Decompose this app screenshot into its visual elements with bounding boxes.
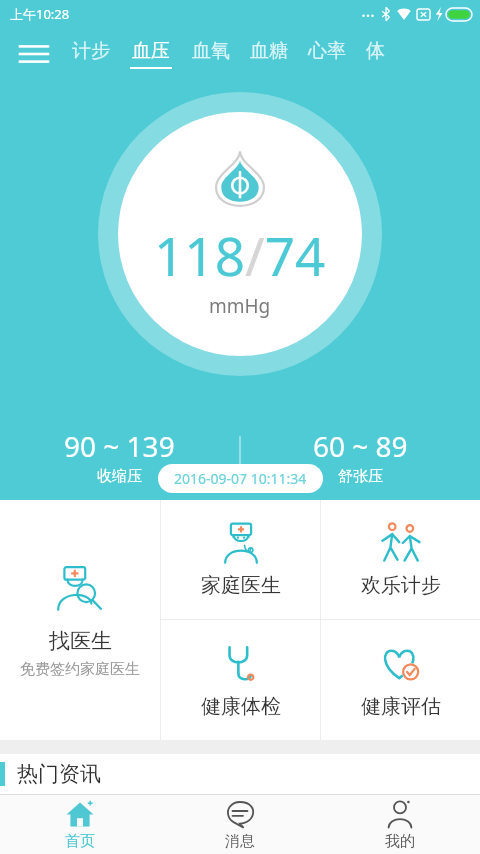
button[interactable]: 血氧 — [192, 39, 230, 69]
button[interactable]: 体 — [366, 39, 385, 69]
staticText: 舒张压 — [338, 467, 383, 486]
button[interactable]: 欢乐计步 — [321, 500, 480, 619]
staticText: 上午10:28 — [10, 5, 70, 23]
staticText: 心率 — [308, 39, 346, 63]
staticText: mmHg — [209, 293, 271, 319]
button[interactable]: 计步 — [72, 39, 110, 69]
button[interactable]: 心率 — [308, 39, 346, 69]
staticText: 健康体检 — [201, 694, 281, 719]
button[interactable]: 健康评估 — [321, 620, 480, 740]
staticText: 欢乐计步 — [361, 573, 441, 598]
staticText: 计步 — [72, 39, 110, 63]
staticText: 首页 — [65, 832, 95, 851]
staticText: 健康评估 — [361, 694, 441, 719]
staticText: 找医生 — [49, 628, 112, 654]
staticText: 热门资讯 — [17, 761, 101, 787]
button[interactable]: 血糖 — [250, 39, 288, 69]
staticText: 60 ~ 89 — [313, 427, 408, 465]
staticText: 118/74 — [154, 219, 326, 291]
button[interactable]: 消息 — [160, 795, 320, 854]
staticText: 血压 — [132, 39, 170, 63]
button[interactable]: 首页 — [0, 795, 160, 854]
button[interactable]: 2016-09-07 10:11:34 — [158, 464, 323, 493]
staticText: 我的 — [385, 832, 415, 851]
button[interactable]: Menu — [12, 32, 56, 76]
staticText: 家庭医生 — [201, 573, 281, 598]
staticText: 90 ~ 139 — [64, 427, 175, 465]
button[interactable]: 健康体检 — [161, 620, 320, 740]
staticText: 2016-09-07 10:11:34 — [174, 469, 307, 488]
button[interactable]: 家庭医生 — [161, 500, 320, 619]
staticText: 消息 — [225, 832, 255, 851]
button[interactable]: 找医生 — [0, 500, 160, 740]
staticText: 血糖 — [250, 39, 288, 63]
button[interactable]: 我的 — [320, 795, 480, 854]
button[interactable]: 血压 — [130, 39, 172, 69]
button[interactable]: 热门资讯 — [0, 754, 480, 794]
staticText: 免费签约家庭医生 — [20, 660, 140, 679]
staticText: 收缩压 — [97, 467, 142, 486]
staticText: 体 — [366, 39, 385, 63]
staticText: 血氧 — [192, 39, 230, 63]
